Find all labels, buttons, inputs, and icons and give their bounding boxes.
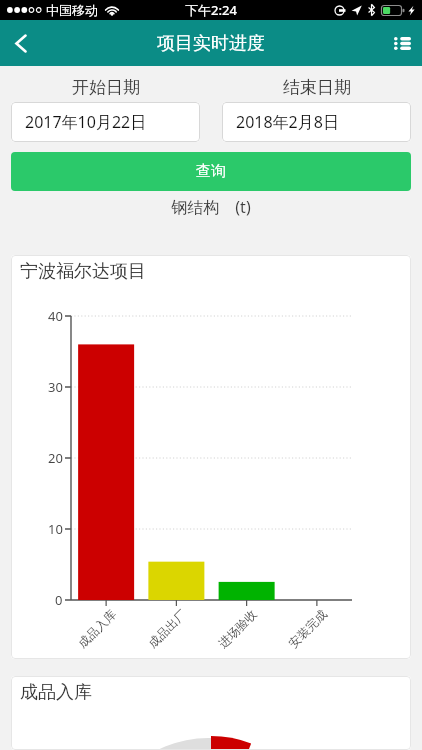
staticText: 项目实时进度 [157, 32, 265, 55]
button[interactable]: 2017年10月22日 [11, 102, 200, 142]
staticText: 宁波福尔达项目 [20, 260, 146, 283]
button[interactable]: 查询 [11, 152, 411, 191]
staticText: 查询 [196, 162, 226, 181]
staticText: 成品入库 [20, 681, 92, 704]
button[interactable]: 2018年2月8日 [222, 102, 411, 142]
staticText: 结束日期 [283, 77, 351, 98]
staticText: 2017年10月22日 [25, 111, 147, 133]
button[interactable]: 返回 [0, 20, 46, 66]
staticText: 下午2:24 [185, 1, 237, 19]
button[interactable]: 列表 [376, 20, 422, 66]
staticText: 中国移动 [46, 2, 98, 18]
staticText: 开始日期 [72, 77, 140, 98]
staticText: 2018年2月8日 [236, 111, 339, 133]
staticText: 钢结构 (t) [0, 196, 422, 218]
